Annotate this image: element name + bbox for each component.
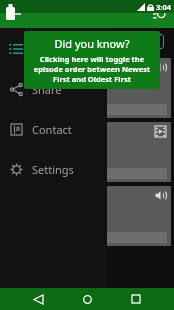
staticText: Download bbox=[7, 169, 46, 179]
button[interactable]: Download bbox=[7, 232, 167, 243]
button[interactable]: Share bbox=[0, 76, 107, 102]
button[interactable]: Show overview bbox=[3, 186, 171, 246]
button[interactable]: Recents bbox=[125, 288, 147, 310]
staticText: Clicking here will toggle the episode or… bbox=[30, 54, 154, 84]
staticText: Episode overview bbox=[8, 62, 154, 73]
staticText: Show overview bbox=[8, 190, 154, 201]
button[interactable]: bonus video.m4v bbox=[3, 122, 171, 182]
staticText: Settings bbox=[32, 162, 74, 177]
staticText: Downlay... bbox=[83, 37, 120, 47]
button[interactable]: Episode overview bbox=[3, 58, 171, 118]
button[interactable]: Episode list bbox=[0, 36, 107, 62]
staticText: Contact bbox=[32, 122, 72, 137]
button[interactable]: Home bbox=[76, 288, 98, 310]
button[interactable]: Played bbox=[130, 34, 164, 49]
button[interactable]: Sort order bbox=[148, 3, 170, 25]
staticText: 3:04 bbox=[156, 2, 171, 12]
staticText: Share bbox=[32, 82, 62, 97]
staticText: Did you know? bbox=[54, 36, 130, 51]
button[interactable]: Contact bbox=[0, 116, 107, 142]
button[interactable]: Did you know? bbox=[24, 31, 160, 89]
button[interactable]: Download bbox=[7, 168, 167, 179]
button[interactable]: Back bbox=[27, 288, 49, 310]
button[interactable]: Downlay... bbox=[78, 34, 125, 49]
button[interactable]: Download bbox=[7, 104, 167, 115]
button[interactable]: Settings bbox=[0, 156, 107, 182]
staticText: bonus video.m4v bbox=[8, 126, 154, 137]
button[interactable]: Back bbox=[4, 3, 26, 25]
